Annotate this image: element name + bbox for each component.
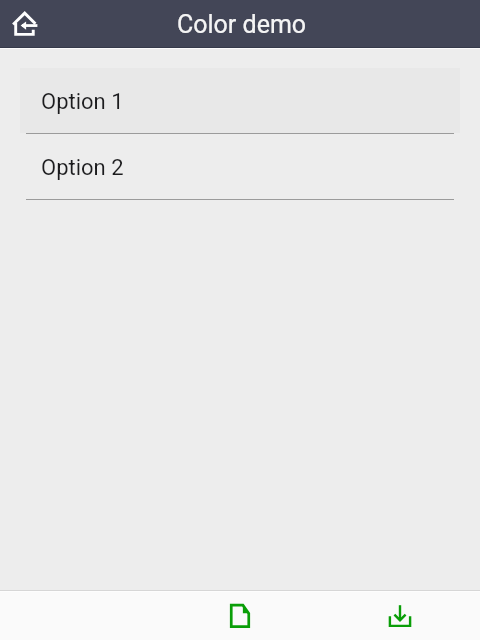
staticText: Option 2: [41, 155, 124, 181]
button[interactable]: Option 1: [20, 68, 460, 133]
button[interactable]: Navigate up to home: [0, 0, 47, 47]
button[interactable]: Option 2: [20, 134, 460, 199]
staticText: Color demo: [177, 10, 307, 39]
staticText: Option 1: [41, 89, 124, 115]
button[interactable]: Download: [376, 592, 424, 640]
button[interactable]: Document: [216, 592, 264, 640]
